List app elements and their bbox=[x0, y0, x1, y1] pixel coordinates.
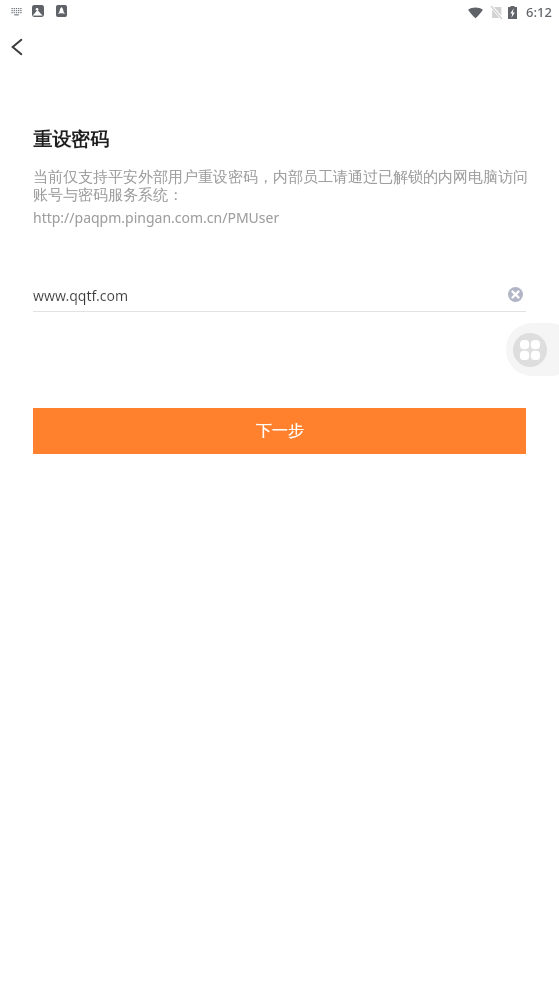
button[interactable]: 下一步 bbox=[33, 408, 526, 454]
button[interactable]: Back bbox=[0, 27, 37, 67]
staticText: 当前仅支持平安外部用户重设密码，内部员工请通过已解锁的内网电脑访问账号与密码服务… bbox=[33, 168, 529, 205]
button[interactable]: www.qqtf.com bbox=[33, 276, 526, 312]
staticText: http://paqpm.pingan.com.cn/PMUser bbox=[33, 208, 280, 227]
staticText: 6:12 bbox=[526, 3, 552, 21]
staticText: 下一步 bbox=[256, 421, 304, 441]
button[interactable]: Clear text bbox=[502, 281, 528, 307]
staticText: www.qqtf.com bbox=[33, 286, 129, 305]
button[interactable]: Assistant bbox=[506, 323, 559, 376]
staticText: 重设密码 bbox=[33, 128, 109, 152]
